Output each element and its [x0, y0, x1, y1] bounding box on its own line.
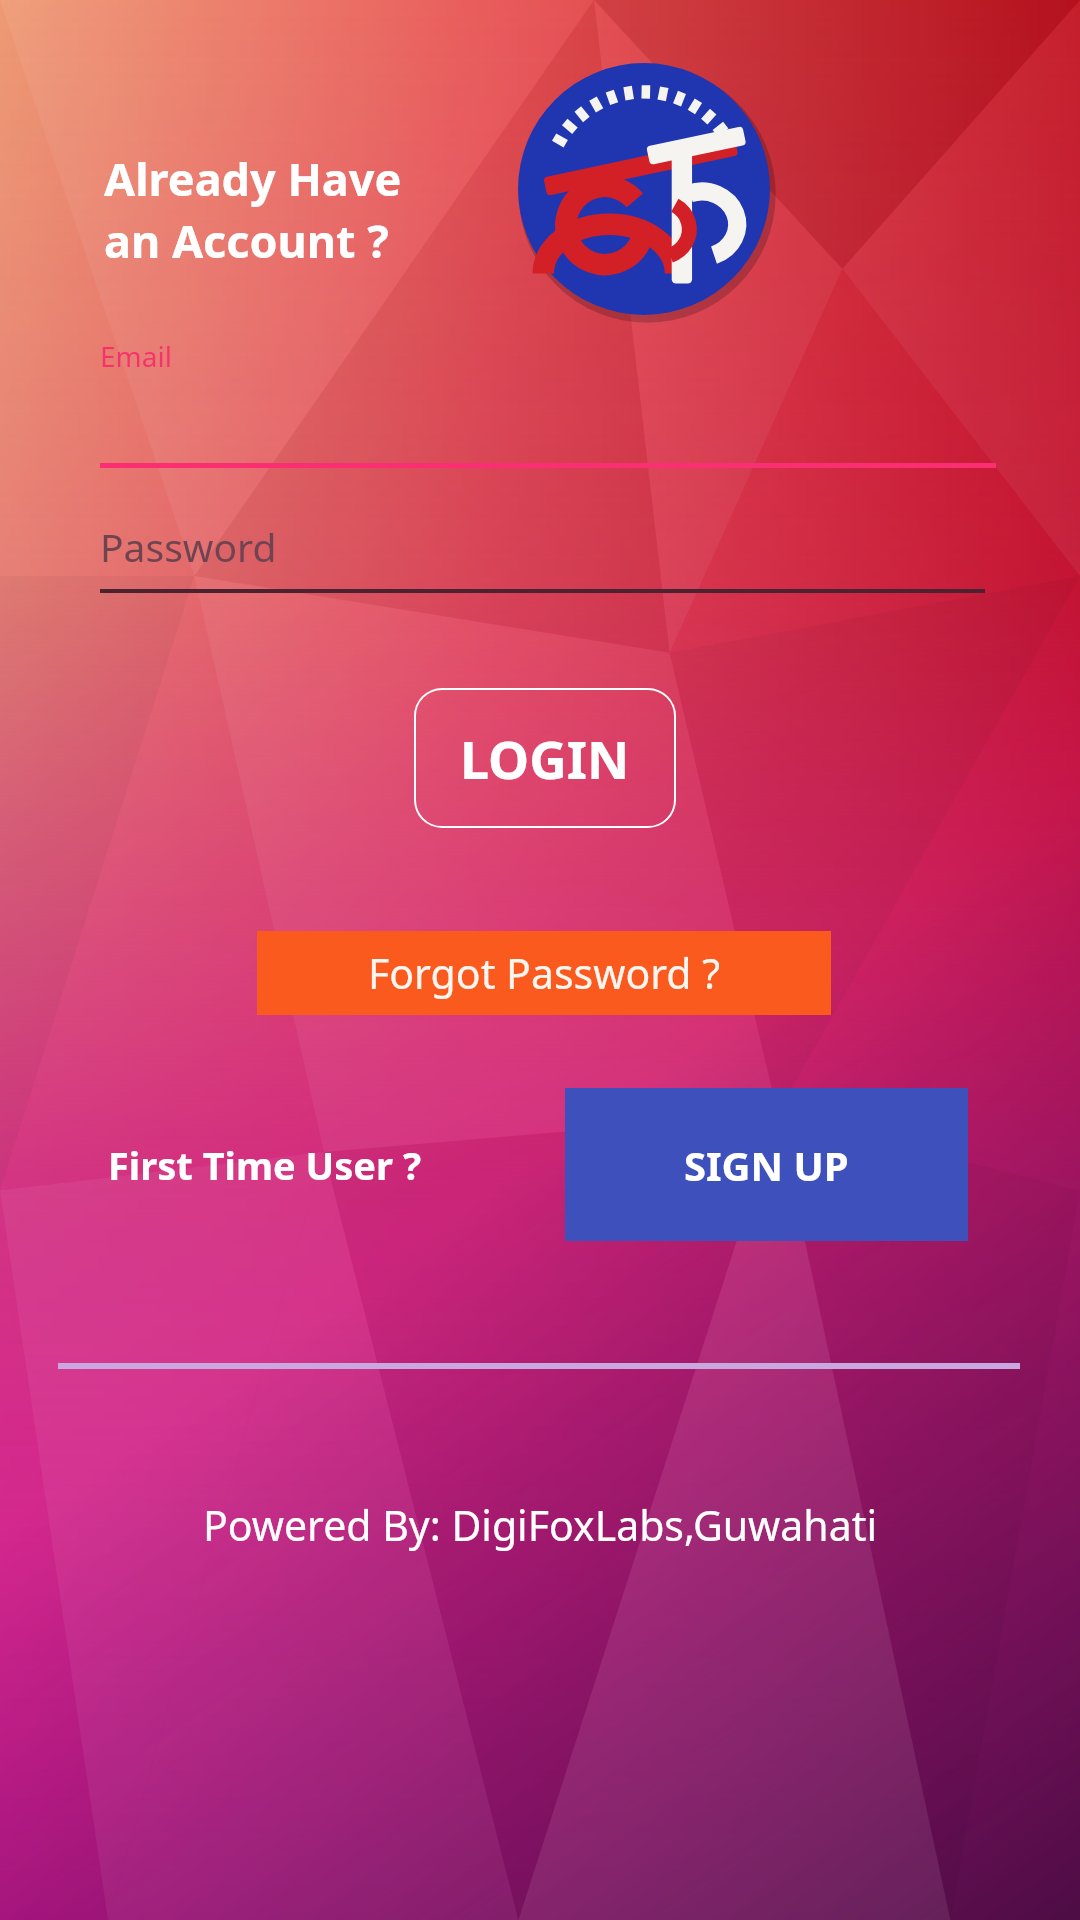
staticText: LOGIN: [460, 723, 630, 794]
button[interactable]: SIGN UP: [565, 1088, 968, 1241]
staticText: Email: [100, 337, 172, 375]
button[interactable]: Forgot Password ?: [257, 931, 831, 1015]
staticText: Password: [100, 520, 277, 573]
button[interactable]: LOGIN: [414, 688, 676, 828]
staticText: Already Have an Account ?: [104, 148, 402, 271]
staticText: SIGN UP: [684, 1138, 849, 1192]
staticText: First Time User ?: [108, 1139, 422, 1191]
staticText: Powered By: DigiFoxLabs,Guwahati: [40, 1497, 1040, 1553]
staticText: Forgot Password ?: [368, 945, 720, 1001]
